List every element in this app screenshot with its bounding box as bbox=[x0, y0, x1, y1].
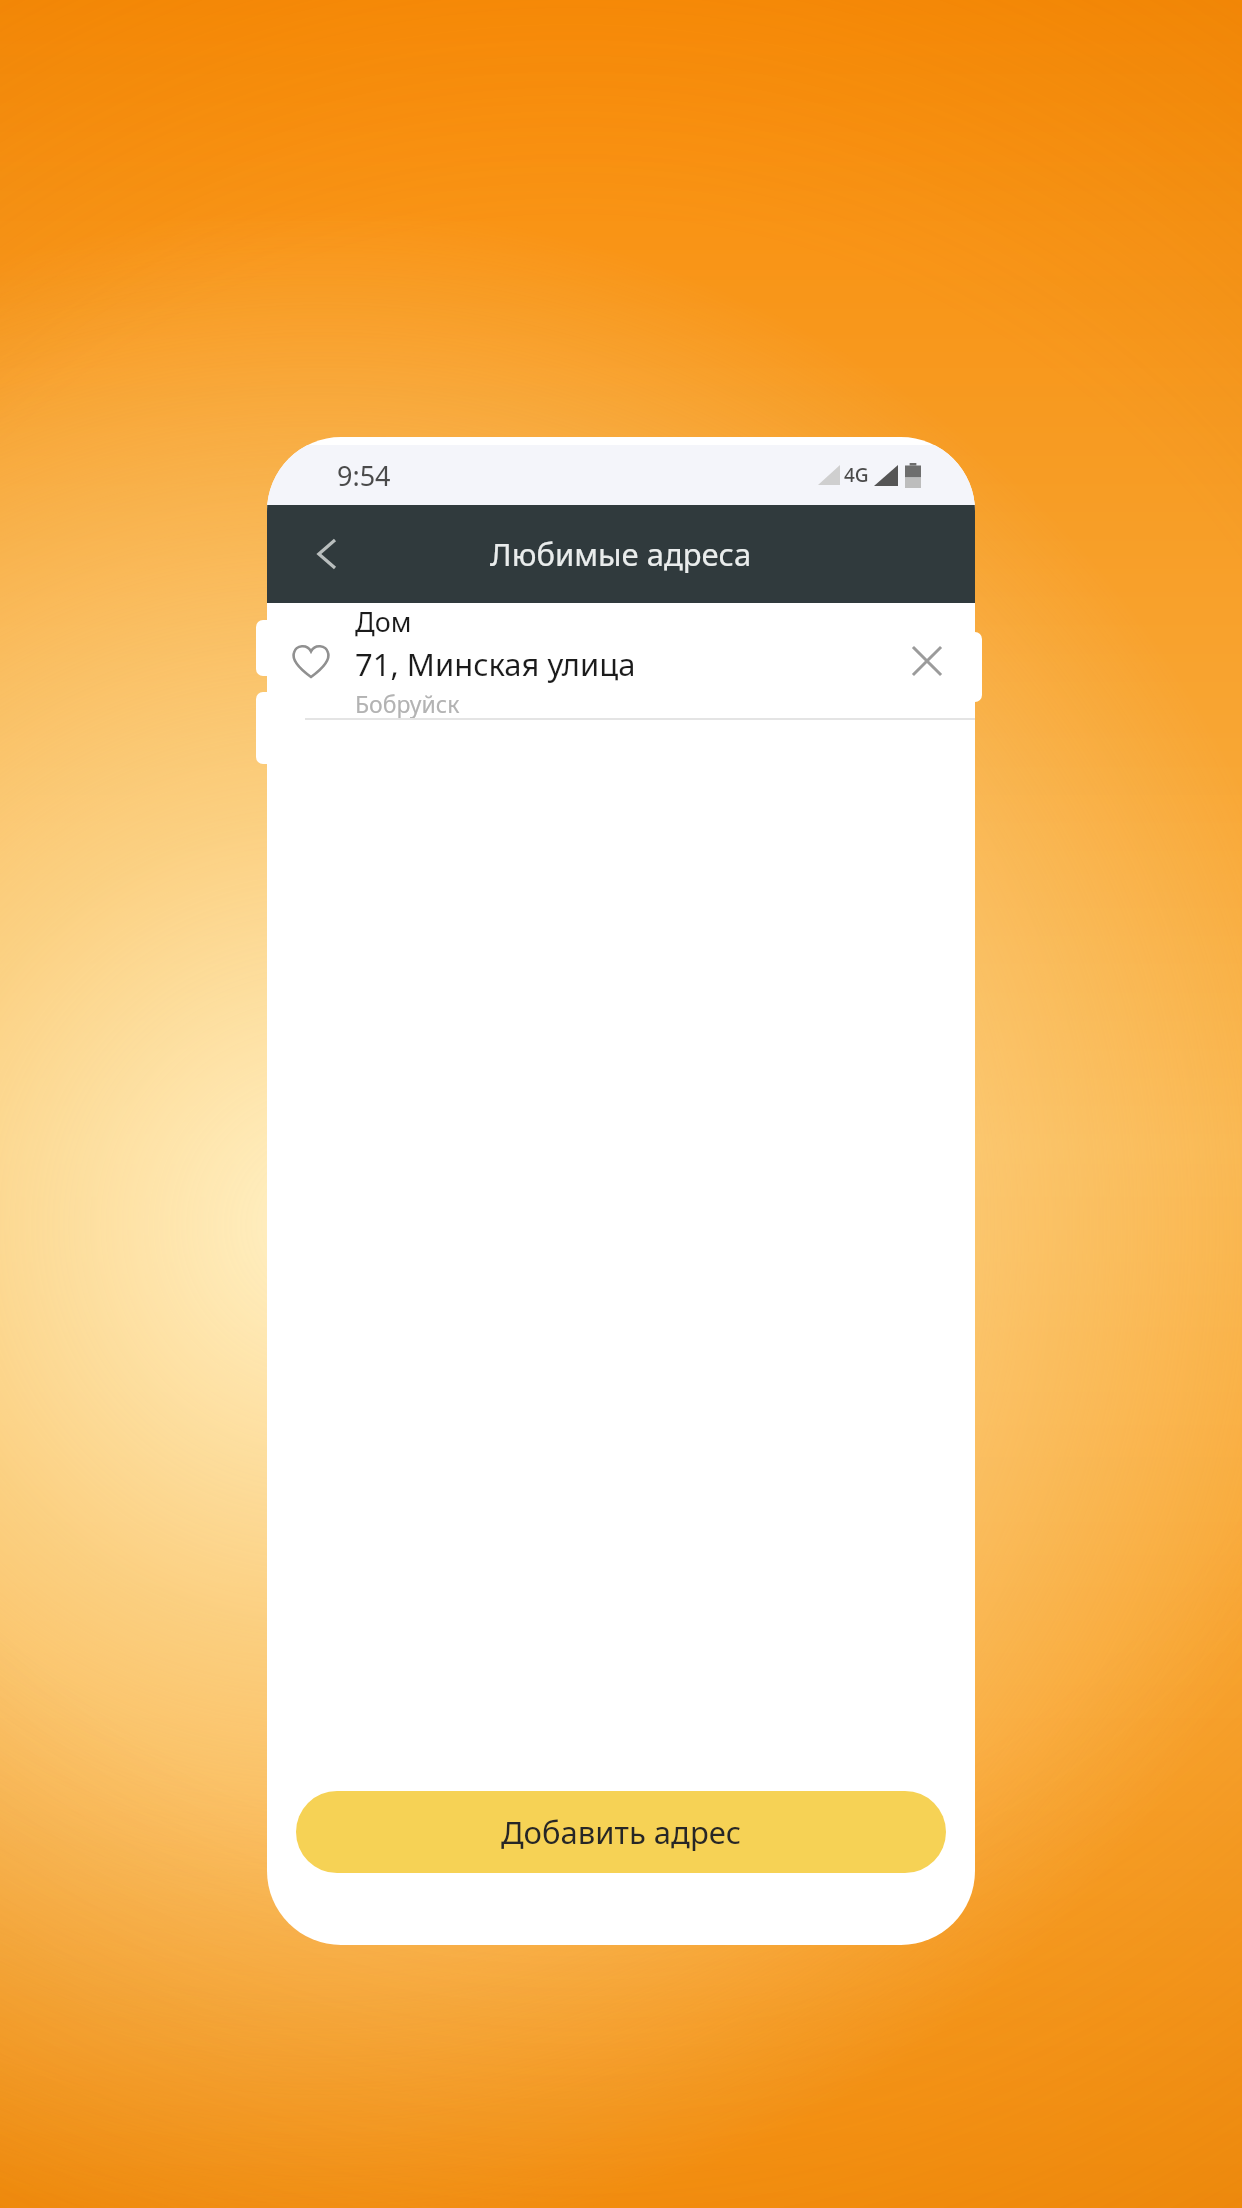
button[interactable]: Добавить адрес bbox=[296, 1791, 946, 1873]
staticText: Бобруйск bbox=[355, 688, 460, 718]
staticText: Любимые адреса bbox=[490, 533, 752, 575]
staticText: 71, Минская улица bbox=[355, 643, 636, 685]
staticText: 9:54 bbox=[337, 457, 391, 494]
staticText: Дом bbox=[355, 603, 412, 640]
staticText: Добавить адрес bbox=[501, 1811, 742, 1853]
staticText: 4G bbox=[844, 462, 869, 488]
button[interactable]: Дом bbox=[267, 603, 975, 718]
button[interactable]: Remove address bbox=[879, 613, 975, 709]
button[interactable]: Back bbox=[289, 516, 365, 592]
